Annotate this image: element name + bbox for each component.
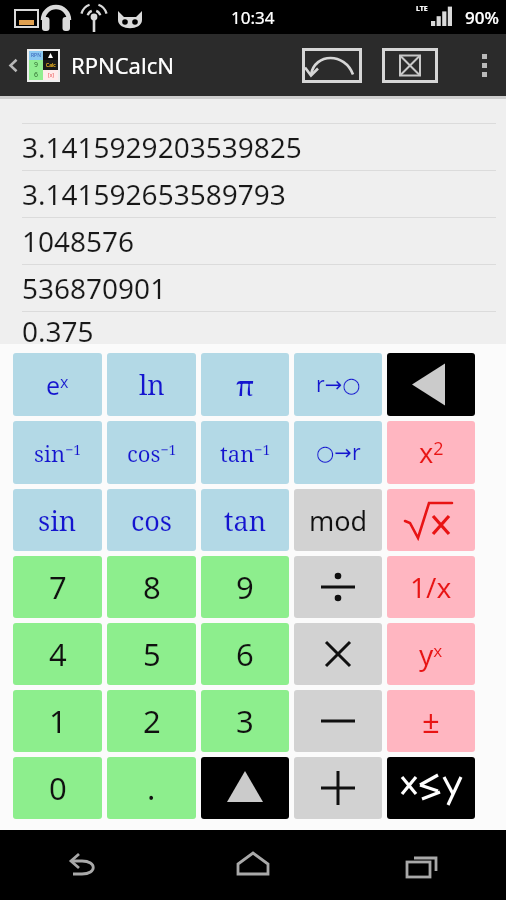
staticText: tan — [224, 502, 267, 539]
staticText: RPN — [31, 52, 41, 59]
button[interactable]: cos−1 — [107, 421, 196, 484]
button[interactable]: ln — [107, 353, 196, 416]
button[interactable]: 8 — [107, 556, 196, 618]
staticText: 1048576 — [22, 222, 135, 260]
button[interactable]: Undo — [302, 48, 362, 83]
button[interactable]: Add — [294, 757, 382, 819]
button[interactable]: tan — [201, 489, 289, 551]
button[interactable]: 5 — [107, 623, 196, 685]
button[interactable]: Recent apps — [337, 830, 506, 900]
staticText: r→○ — [316, 370, 361, 399]
staticText: 1/x — [410, 568, 452, 606]
staticText: 0 — [49, 767, 67, 809]
staticText: 9 — [236, 566, 254, 608]
staticText: . — [147, 767, 156, 809]
button[interactable]: Home — [168, 830, 337, 900]
button[interactable]: Clear — [382, 48, 438, 83]
button[interactable]: 6 — [201, 623, 289, 685]
button[interactable]: Multiply — [294, 623, 382, 685]
staticText: 1 — [49, 700, 67, 742]
staticText: π — [236, 366, 255, 404]
button[interactable]: 9 — [201, 556, 289, 618]
staticText: sin−1 — [34, 438, 82, 468]
staticText: RPNCalcN — [71, 50, 174, 80]
button[interactable]: ○→r — [294, 421, 382, 484]
button[interactable]: ± — [387, 690, 475, 752]
staticText: 5 — [143, 633, 161, 675]
button[interactable]: Subtract — [294, 690, 382, 752]
button[interactable]: . — [107, 757, 196, 819]
staticText: 2 — [143, 700, 161, 742]
staticText: tan−1 — [220, 438, 271, 468]
staticText: LTE — [416, 4, 428, 14]
button[interactable]: 2 — [107, 690, 196, 752]
staticText: ln — [139, 366, 165, 403]
button[interactable]: yx — [387, 623, 475, 685]
staticText: 90% — [465, 6, 499, 29]
button[interactable]: mod — [294, 489, 382, 551]
staticText: Calc — [46, 62, 56, 69]
button[interactable]: Backspace — [387, 353, 475, 416]
button[interactable]: 7 — [13, 556, 102, 618]
button[interactable]: 0 — [13, 757, 102, 819]
staticText: 7 — [49, 566, 67, 608]
staticText: 10:34 — [231, 6, 275, 29]
staticText: yx — [419, 635, 443, 673]
button[interactable]: 4 — [13, 623, 102, 685]
button[interactable]: sin — [13, 489, 102, 551]
staticText: ○→r — [316, 438, 361, 467]
button[interactable]: More options — [462, 34, 506, 96]
staticText: 3.141592653589793 — [22, 175, 286, 213]
button[interactable]: sin−1 — [13, 421, 102, 484]
staticText: 536870901 — [22, 269, 167, 307]
staticText: ± — [422, 700, 440, 742]
button[interactable]: cos — [107, 489, 196, 551]
staticText: 9 — [34, 60, 39, 70]
staticText: x2 — [419, 434, 444, 471]
button[interactable]: Swap x and y — [387, 757, 475, 819]
staticText: 3.1415929203539825 — [22, 128, 302, 166]
staticText: 6 — [34, 70, 39, 80]
button[interactable]: Divide — [294, 556, 382, 618]
staticText: 0.375 — [22, 312, 94, 344]
staticText: sin — [38, 502, 77, 539]
button[interactable]: tan−1 — [201, 421, 289, 484]
staticText: cos−1 — [127, 438, 177, 468]
staticText: 3 — [236, 700, 254, 742]
button[interactable]: Up — [0, 34, 27, 96]
staticText: [x] — [48, 72, 54, 79]
button[interactable]: 1 — [13, 690, 102, 752]
button[interactable]: r→○ — [294, 353, 382, 416]
staticText: cos — [131, 502, 173, 539]
button[interactable]: Enter — [201, 757, 289, 819]
staticText: 6 — [236, 633, 254, 675]
button[interactable]: 1/x — [387, 556, 475, 618]
button[interactable]: Back — [0, 830, 168, 900]
staticText: mod — [309, 502, 368, 539]
button[interactable]: Square root — [387, 489, 475, 551]
staticText: 4 — [49, 633, 67, 675]
button[interactable]: ex — [13, 353, 102, 416]
button[interactable]: x2 — [387, 421, 475, 484]
button[interactable]: π — [201, 353, 289, 416]
staticText: 8 — [143, 566, 161, 608]
button[interactable]: 3 — [201, 690, 289, 752]
staticText: ex — [46, 368, 69, 402]
